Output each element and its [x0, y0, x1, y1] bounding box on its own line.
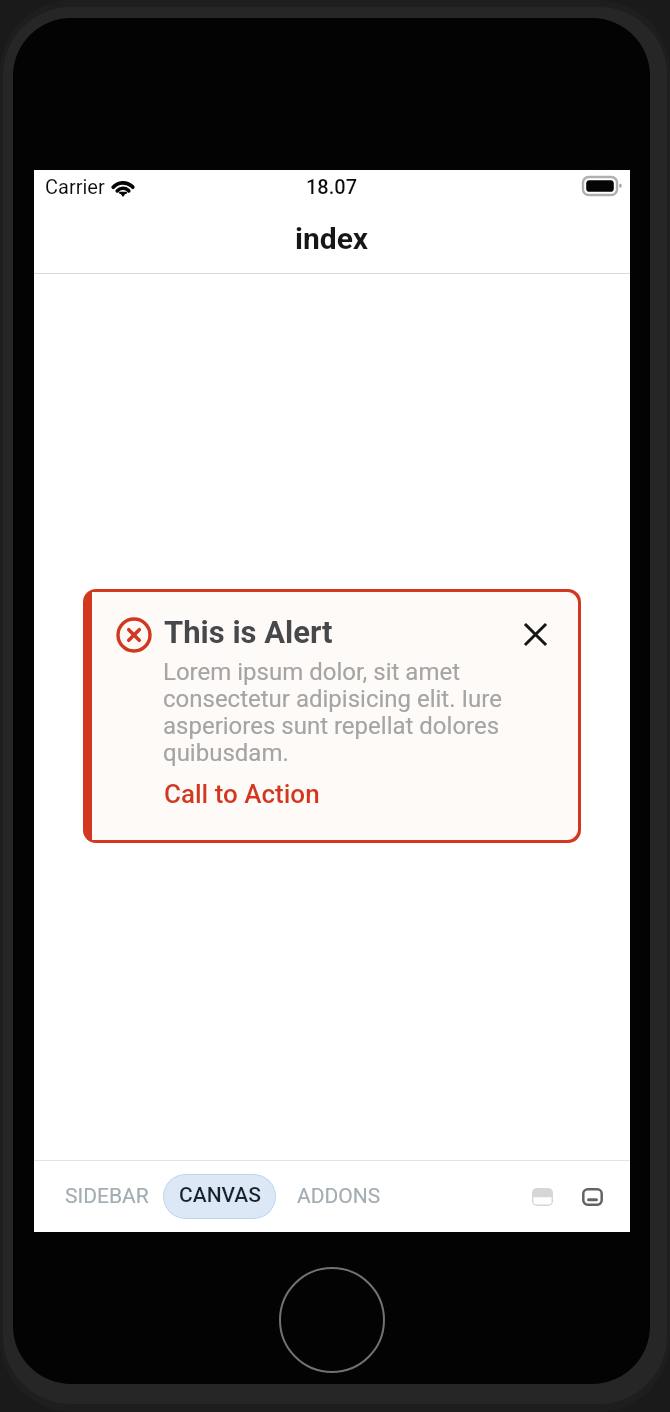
button[interactable]: Dock panel to bottom [520, 1177, 564, 1217]
staticText: SIDEBAR [65, 1184, 149, 1209]
button[interactable]: CANVAS [163, 1174, 276, 1219]
button[interactable]: Close alert [514, 613, 556, 655]
button[interactable]: Call to Action [162, 779, 322, 809]
staticText: This is Alert [164, 614, 333, 650]
staticText: Carrier [45, 175, 105, 198]
button[interactable]: SIDEBAR [53, 1176, 161, 1218]
staticText: Lorem ipsum dolor, sit amet consectetur … [163, 659, 511, 767]
staticText: Call to Action [164, 779, 320, 809]
staticText: index [295, 221, 369, 256]
button[interactable]: Dock panel to right [570, 1177, 614, 1217]
staticText: CANVAS [179, 1183, 261, 1208]
button[interactable]: This is Alert [83, 589, 581, 843]
button[interactable]: ADDONS [285, 1176, 393, 1218]
staticText: 18.07 [306, 175, 358, 198]
staticText: ADDONS [297, 1184, 381, 1209]
